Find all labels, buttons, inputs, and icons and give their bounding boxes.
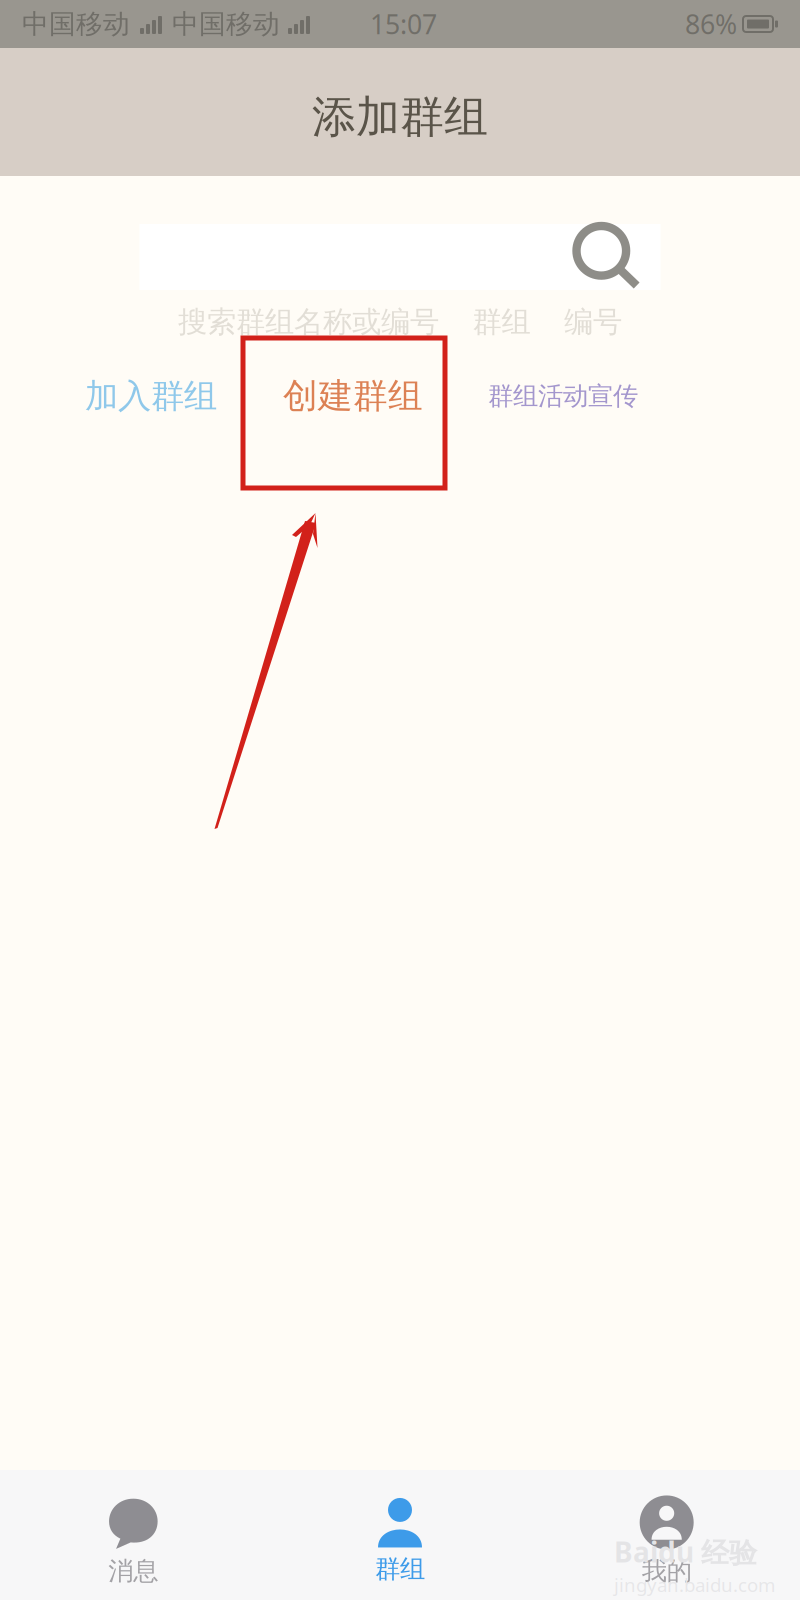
button[interactable]: 消息 bbox=[0, 1495, 267, 1586]
staticText: 我的 bbox=[642, 1555, 692, 1586]
button[interactable]: 加入群组 bbox=[48, 376, 254, 416]
button[interactable]: 群组 bbox=[267, 1497, 533, 1584]
staticText: 群组活动宣传 bbox=[488, 380, 638, 412]
staticText: Baidu 经验 bbox=[614, 1533, 757, 1570]
staticText: 消息 bbox=[108, 1555, 158, 1586]
button[interactable]: 创建群组 bbox=[254, 375, 452, 417]
button[interactable]: 群组活动宣传 bbox=[452, 380, 674, 412]
staticText: jingyan.baidu.com bbox=[614, 1572, 775, 1597]
button[interactable]: Search groups bbox=[139, 224, 660, 290]
staticText: 中国移动 bbox=[22, 8, 130, 40]
staticText: 编号 bbox=[564, 304, 622, 340]
button[interactable]: 我的 bbox=[533, 1495, 800, 1586]
staticText: 添加群组 bbox=[312, 90, 488, 144]
staticText: 搜索群组名称或编号 bbox=[178, 304, 439, 340]
staticText: 群组 bbox=[375, 1553, 425, 1584]
staticText: 15:07 bbox=[370, 6, 437, 42]
staticText: 中国移动 bbox=[172, 8, 280, 40]
staticText: 创建群组 bbox=[283, 375, 423, 417]
staticText: 群组 bbox=[472, 304, 530, 340]
staticText: 加入群组 bbox=[85, 376, 217, 416]
staticText: 86% bbox=[685, 6, 737, 42]
